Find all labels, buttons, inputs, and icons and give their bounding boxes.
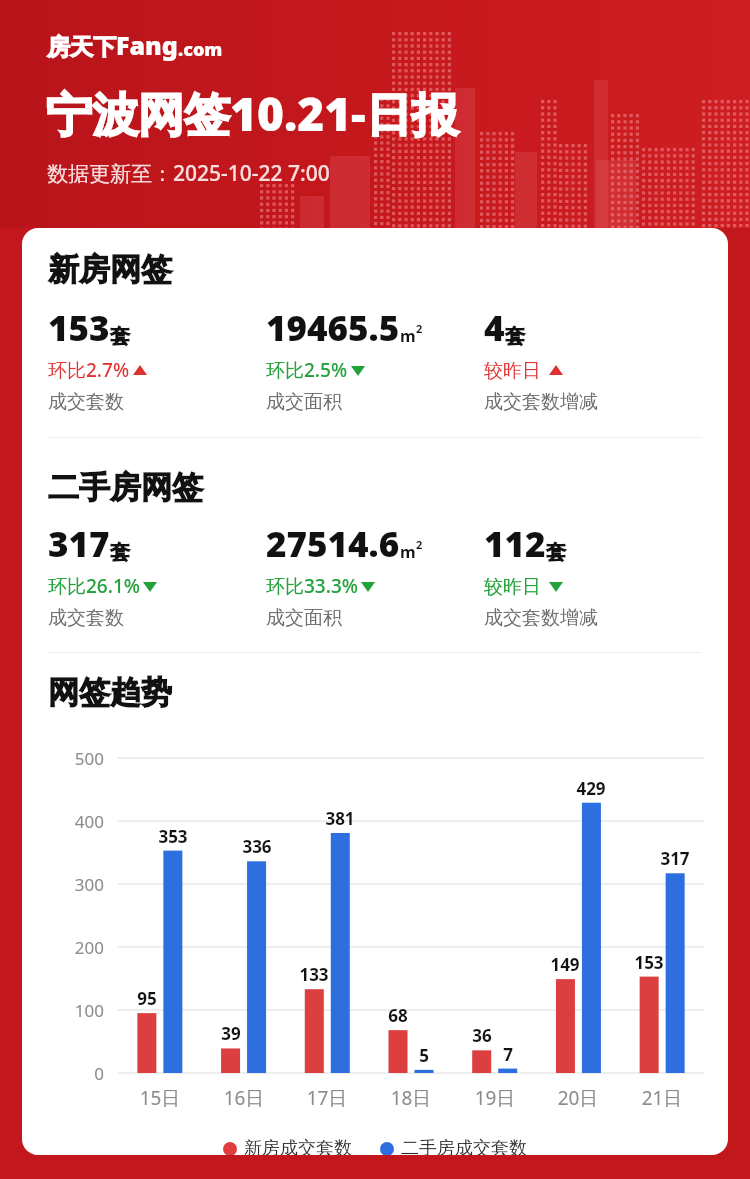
staticText: 成交套数增减 <box>484 606 598 630</box>
staticText: 成交套数 <box>48 606 124 630</box>
staticText: 二手房网签 <box>48 468 203 507</box>
staticText: 500 <box>42 747 104 770</box>
staticText: 套 <box>110 540 130 565</box>
staticText: 39 <box>207 1022 255 1045</box>
staticText: 2 <box>416 321 423 336</box>
staticText: 429 <box>567 777 615 800</box>
staticText: 27514.6 <box>266 520 400 568</box>
staticText: 房天下 <box>47 33 116 62</box>
other: 上升 <box>548 363 564 378</box>
staticText: 新房网签 <box>48 250 172 289</box>
staticText: 133 <box>290 963 338 986</box>
staticText: 21日 <box>626 1085 698 1111</box>
staticText: 16日 <box>208 1085 280 1111</box>
staticText: 套 <box>110 324 130 349</box>
staticText: 成交套数 <box>48 390 124 414</box>
staticText: 112 <box>484 520 546 568</box>
staticText: 15日 <box>124 1085 196 1111</box>
staticText: 18日 <box>375 1085 447 1111</box>
staticText: 20日 <box>542 1085 614 1111</box>
button[interactable]: 19465.5 <box>266 304 484 414</box>
button[interactable]: 新房成交套数 <box>223 1137 352 1155</box>
button[interactable]: 4 <box>484 304 684 414</box>
button[interactable]: 二手房成交套数 <box>380 1137 527 1155</box>
button[interactable]: 317 <box>48 520 266 630</box>
staticText: 套 <box>546 540 566 565</box>
staticText: 381 <box>316 807 364 830</box>
staticText: 153 <box>48 304 110 352</box>
staticText: 0 <box>42 1062 104 1085</box>
staticText: Fang <box>116 28 178 62</box>
staticText: 68 <box>374 1004 422 1027</box>
staticText: 成交面积 <box>266 606 342 630</box>
staticText: m <box>400 541 416 563</box>
staticText: 17日 <box>291 1085 363 1111</box>
staticText: 19465.5 <box>266 304 400 352</box>
other: 下降 <box>548 579 564 594</box>
staticText: 套 <box>505 324 525 349</box>
staticText: 宁波网签10.21-日报 <box>46 82 458 145</box>
staticText: 成交套数增减 <box>484 390 598 414</box>
other: 下降 <box>360 579 376 594</box>
staticText: 317 <box>48 520 110 568</box>
staticText: 100 <box>42 999 104 1022</box>
staticText: 300 <box>42 873 104 896</box>
staticText: 数据更新至：2025-10-22 7:00 <box>47 159 330 188</box>
staticText: 环比26.1% <box>48 573 140 599</box>
other: 上升 <box>132 363 148 378</box>
staticText: 二手房成交套数 <box>401 1137 527 1155</box>
staticText: 153 <box>625 951 673 974</box>
staticText: 网签趋势 <box>48 673 172 712</box>
staticText: 19日 <box>459 1085 531 1111</box>
staticText: 2 <box>416 537 423 552</box>
staticText: 5 <box>400 1044 448 1067</box>
staticText: 环比2.7% <box>48 357 130 383</box>
staticText: 较昨日 <box>484 573 546 599</box>
other: 下降 <box>142 579 158 594</box>
staticText: 149 <box>541 953 589 976</box>
other: 下降 <box>350 363 366 378</box>
staticText: 环比33.3% <box>266 573 358 599</box>
staticText: 353 <box>149 825 197 848</box>
staticText: 7 <box>484 1043 532 1066</box>
button[interactable]: 153 <box>48 304 266 414</box>
staticText: 成交面积 <box>266 390 342 414</box>
staticText: 400 <box>42 810 104 833</box>
staticText: 336 <box>233 835 281 858</box>
staticText: m <box>400 325 416 347</box>
staticText: 200 <box>42 936 104 959</box>
staticText: 317 <box>651 847 699 870</box>
button[interactable]: 112 <box>484 520 684 630</box>
staticText: 4 <box>484 304 505 352</box>
staticText: 36 <box>458 1024 506 1047</box>
staticText: 95 <box>123 987 171 1010</box>
staticText: 新房成交套数 <box>244 1137 352 1155</box>
staticText: 较昨日 <box>484 357 546 383</box>
staticText: .com <box>178 37 223 62</box>
staticText: 环比2.5% <box>266 357 348 383</box>
button[interactable]: 27514.6 <box>266 520 484 630</box>
